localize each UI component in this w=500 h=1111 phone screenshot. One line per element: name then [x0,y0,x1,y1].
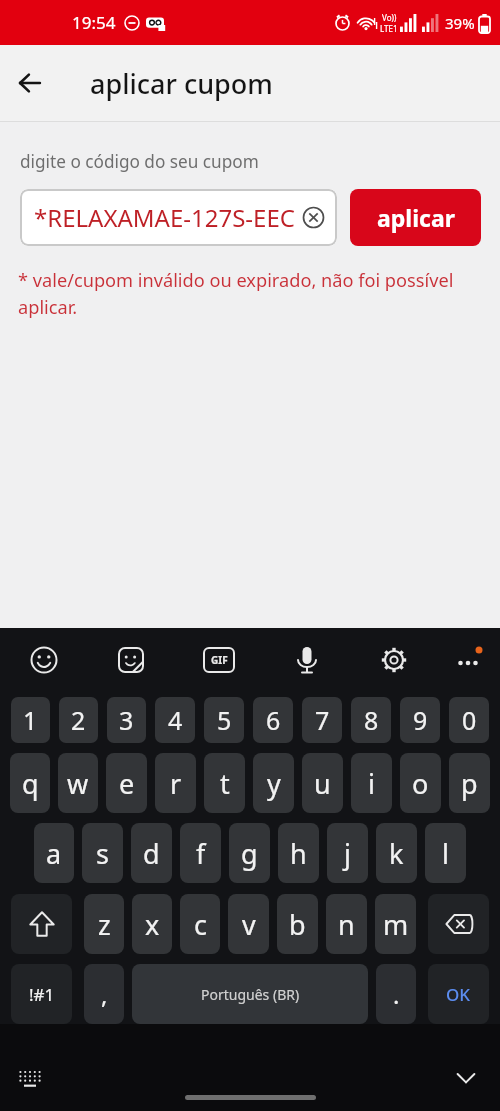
button[interactable]: 8 [351,697,391,743]
button[interactable]: n [326,894,367,954]
staticText: . [393,978,400,1011]
staticText: h [290,835,307,872]
button[interactable] [11,894,72,954]
staticText: s [96,835,109,872]
staticText: OK [446,983,471,1006]
staticText: m [383,906,409,943]
staticText: g [241,835,258,872]
button[interactable]: 2 [59,697,98,743]
staticText: b [289,906,306,943]
button[interactable] [428,894,489,954]
button[interactable]: i [351,753,392,813]
button[interactable]: d [131,823,172,883]
button[interactable]: g [229,823,270,883]
button[interactable] [285,638,329,682]
button[interactable]: h [278,823,319,883]
button[interactable] [372,638,416,682]
staticText: * vale/cupom inválido ou expirado, não f… [18,268,454,320]
button[interactable]: !#1 [11,964,72,1024]
staticText: Vo)) [382,12,397,23]
button[interactable]: k [376,823,417,883]
staticText: w [67,765,89,802]
staticText: aplicar cupom [90,65,273,102]
staticText: 9 [413,703,428,737]
staticText: 7 [315,703,330,737]
staticText: p [461,765,478,802]
staticText: d [143,835,160,872]
button[interactable]: m [375,894,416,954]
staticText: 8 [364,703,379,737]
staticText: y [267,765,281,802]
button[interactable]: 0 [449,697,489,743]
staticText: i [368,765,375,802]
staticText: e [119,765,135,802]
button[interactable]: c [180,894,220,954]
staticText: LTE1 [380,23,398,34]
button[interactable]: a [34,823,74,883]
button[interactable]: *RELAXAMAE-127S-EEC [20,189,337,246]
button[interactable]: p [449,753,490,813]
staticText: v [242,906,256,943]
staticText: n [338,906,355,943]
button[interactable]: t [204,753,245,813]
button[interactable] [10,1058,50,1098]
button[interactable]: , [84,964,124,1024]
button[interactable]: x [132,894,172,954]
button[interactable] [446,1058,486,1098]
staticText: 39% [445,13,475,33]
button[interactable]: u [302,753,343,813]
button[interactable] [22,638,66,682]
button[interactable]: 6 [253,697,293,743]
button[interactable]: o [400,753,441,813]
staticText: f [196,835,206,872]
staticText: aplicar [377,202,455,233]
button[interactable]: j [327,823,368,883]
button[interactable]: s [82,823,123,883]
button[interactable]: e [106,753,147,813]
staticText: GIF [211,653,228,667]
staticText: j [344,835,351,872]
button[interactable]: 5 [204,697,244,743]
button[interactable]: 4 [155,697,195,743]
button[interactable]: l [425,823,466,883]
button[interactable] [109,638,153,682]
button[interactable]: 9 [400,697,440,743]
button[interactable]: q [10,753,50,813]
button[interactable]: v [228,894,269,954]
button[interactable]: f [180,823,221,883]
staticText: u [314,765,331,802]
button[interactable] [8,61,52,105]
staticText: 4 [168,703,183,737]
staticText: r [170,765,182,802]
staticText: 19:54 [72,11,116,34]
staticText: l [442,835,449,872]
staticText: 1 [23,703,38,737]
button[interactable]: aplicar [350,189,481,246]
button[interactable]: 1 [11,697,50,743]
button[interactable]: GIF [197,638,241,682]
staticText: 6 [266,703,281,737]
staticText: , [101,978,108,1011]
button[interactable]: w [58,753,98,813]
staticText: x [145,906,160,943]
button[interactable]: 7 [302,697,342,743]
staticText: 5 [217,703,232,737]
button[interactable]: Português (BR) [132,964,368,1024]
staticText: Português (BR) [201,985,300,1004]
staticText: z [98,906,111,943]
staticText: !#1 [29,983,55,1006]
button[interactable]: z [84,894,124,954]
staticText: 0 [462,703,477,737]
button[interactable]: y [253,753,294,813]
button[interactable]: b [277,894,318,954]
staticText: 2 [71,703,86,737]
button[interactable]: r [155,753,196,813]
button[interactable]: 3 [107,697,146,743]
staticText: t [220,765,230,802]
staticText: c [194,906,207,943]
staticText: a [46,835,62,872]
staticText: 3 [119,703,134,737]
button[interactable] [446,638,490,682]
button[interactable]: OK [428,964,489,1024]
button[interactable]: . [376,964,416,1024]
